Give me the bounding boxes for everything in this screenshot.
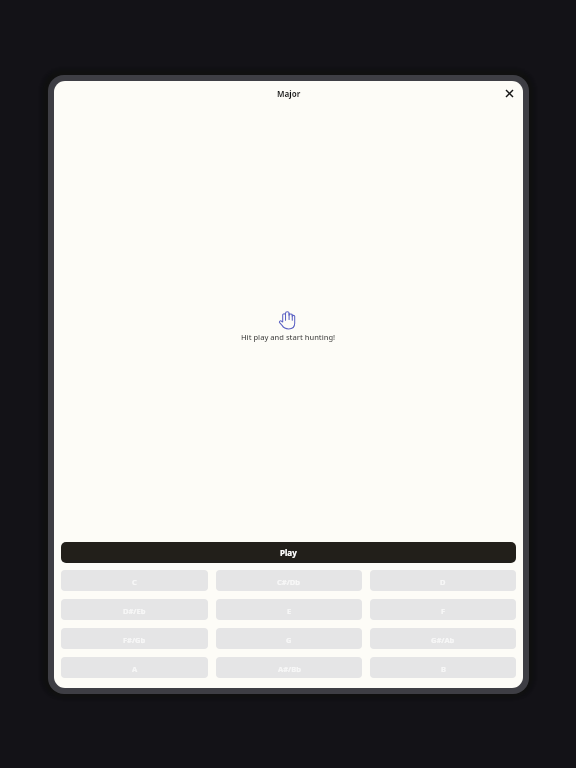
- staticText: E: [287, 606, 292, 616]
- staticText: F#/Gb: [123, 635, 146, 645]
- button[interactable]: Close: [500, 85, 518, 103]
- staticText: G#/Ab: [431, 635, 455, 645]
- staticText: D: [440, 577, 446, 587]
- staticText: Hit play and start hunting!: [241, 332, 336, 342]
- staticText: C#/Db: [277, 577, 301, 587]
- staticText: A: [132, 664, 138, 674]
- staticText: C: [132, 577, 137, 587]
- staticText: Major: [277, 88, 301, 99]
- staticText: B: [441, 664, 446, 674]
- staticText: D#/Eb: [123, 606, 146, 616]
- staticText: G: [286, 635, 292, 645]
- staticText: A#/Bb: [278, 664, 301, 674]
- staticText: Play: [280, 547, 297, 558]
- button[interactable]: Play: [61, 542, 516, 563]
- staticText: F: [441, 606, 446, 616]
